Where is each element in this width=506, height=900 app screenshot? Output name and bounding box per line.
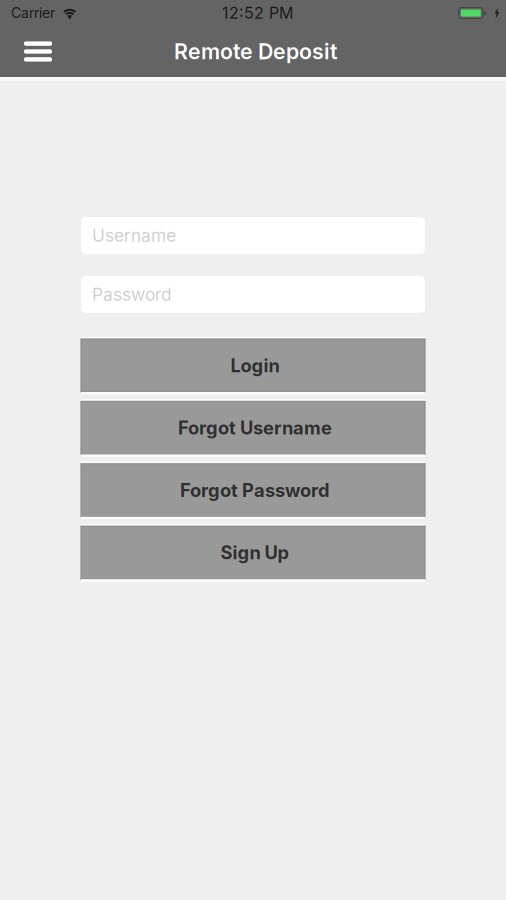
staticText: Remote Deposit [174,39,338,64]
staticText: 12:52 PM [222,3,293,23]
button[interactable]: Password [81,276,425,313]
button[interactable]: Username [81,217,425,254]
button[interactable]: Forgot Password [81,461,425,519]
staticText: Password [92,284,172,305]
button[interactable]: Sign Up [81,524,425,582]
button[interactable]: Login [81,337,425,394]
staticText: Username [92,225,176,246]
button[interactable]: Forgot Username [81,399,425,457]
staticText: Forgot Username [178,417,332,439]
staticText: Forgot Password [180,479,330,501]
button[interactable]: Menu [0,29,65,73]
staticText: Login [230,354,279,376]
staticText: Carrier [11,5,55,21]
staticText: Sign Up [220,542,289,564]
